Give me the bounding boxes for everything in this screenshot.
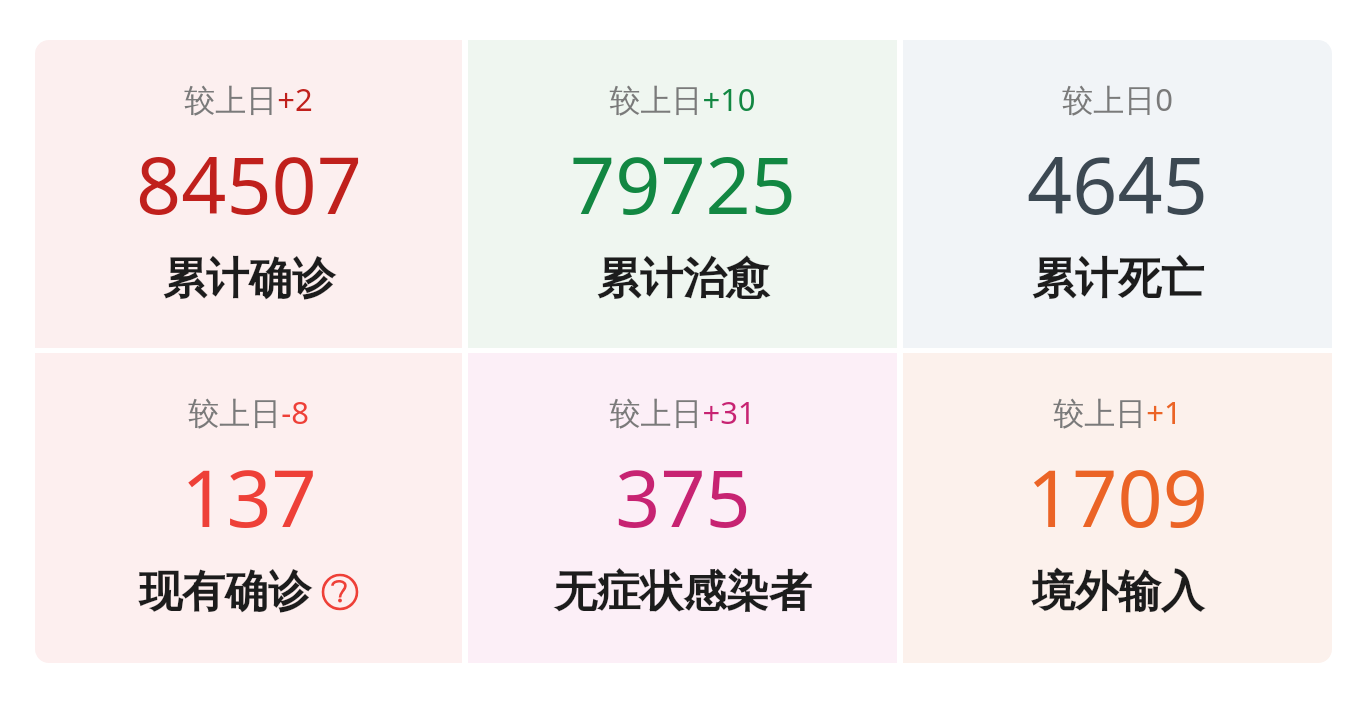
button[interactable]: 较上日+10: [468, 40, 897, 348]
staticText: 84507: [136, 130, 362, 238]
staticText: 较上日+2: [184, 78, 313, 120]
button[interactable]: 较上日+2: [35, 40, 462, 348]
staticText: 1709: [1027, 443, 1208, 551]
staticText: 较上日0: [1062, 78, 1173, 120]
staticText: 较上日+10: [609, 78, 756, 120]
staticText: 累计死亡: [1032, 252, 1204, 306]
staticText: 较上日+31: [609, 391, 756, 433]
staticText: 累计确诊: [163, 252, 335, 306]
button[interactable]: 较上日+31: [468, 353, 897, 663]
staticText: 4645: [1027, 130, 1208, 238]
staticText: 较上日+1: [1053, 391, 1182, 433]
staticText: 较上日-8: [188, 391, 309, 433]
staticText: 无症状感染者: [554, 565, 812, 619]
staticText: 境外输入: [1032, 565, 1204, 619]
staticText: 现有确诊: [139, 565, 311, 619]
staticText: 累计治愈: [597, 252, 769, 306]
staticText: 375: [615, 443, 751, 551]
staticText: 79725: [570, 130, 796, 238]
staticText: 137: [181, 443, 317, 551]
button[interactable]: 较上日-8: [35, 353, 462, 663]
button[interactable]: 较上日0: [903, 40, 1332, 348]
button[interactable]: 较上日+1: [903, 353, 1332, 663]
button[interactable]: 帮助说明: [321, 573, 359, 611]
